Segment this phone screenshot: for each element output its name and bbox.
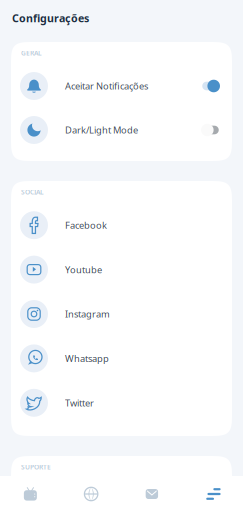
button[interactable]: Explore bbox=[61, 476, 122, 512]
staticText: SOCIAL bbox=[21, 188, 44, 196]
button[interactable]: Aceitar Notificações bbox=[11, 64, 232, 108]
button[interactable]: Whatsapp bbox=[11, 336, 232, 381]
staticText: Ajuda bbox=[65, 494, 90, 506]
staticText: GERAL bbox=[21, 49, 42, 57]
staticText: Youtube bbox=[65, 263, 102, 276]
button[interactable]: ? bbox=[11, 478, 232, 512]
button[interactable]: Twitter bbox=[11, 381, 232, 425]
staticText: Whatsapp bbox=[65, 352, 109, 365]
staticText: ? bbox=[31, 493, 36, 507]
button[interactable]: Dark/Light Mode bbox=[11, 108, 232, 152]
staticText: Instagram bbox=[65, 308, 110, 320]
button[interactable]: Instagram bbox=[11, 292, 232, 336]
button[interactable]: TV bbox=[0, 476, 61, 512]
button[interactable]: Youtube bbox=[11, 247, 232, 292]
button[interactable]: Mail bbox=[121, 476, 182, 512]
staticText: Dark/Light Mode bbox=[65, 124, 138, 136]
staticText: Aceitar Notificações bbox=[65, 80, 148, 92]
button[interactable]: Facebook bbox=[11, 203, 232, 247]
staticText: SUPORTE bbox=[21, 463, 51, 471]
staticText: Configurações bbox=[12, 11, 89, 25]
button[interactable]: Settings bbox=[182, 476, 243, 512]
staticText: Twitter bbox=[65, 397, 94, 409]
staticText: Facebook bbox=[65, 219, 107, 231]
